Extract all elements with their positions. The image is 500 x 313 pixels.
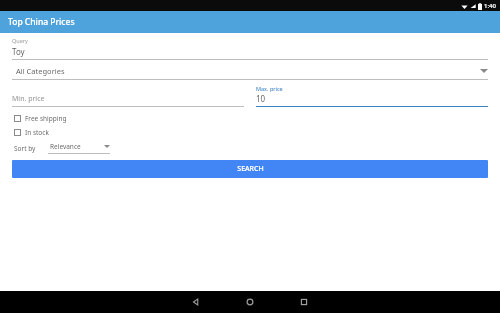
- button[interactable]: All Categories: [12, 66, 488, 80]
- button[interactable]: Relevance: [48, 142, 110, 154]
- button[interactable]: Recent apps: [277, 291, 331, 313]
- staticText: Relevance: [50, 142, 81, 151]
- button[interactable]: Max. price: [256, 85, 488, 107]
- staticText: All Categories: [16, 66, 65, 76]
- staticText: SEARCH: [237, 164, 264, 174]
- button[interactable]: Home: [223, 291, 277, 313]
- staticText: Query: [12, 37, 28, 44]
- staticText: Free shipping: [25, 114, 67, 123]
- staticText: Top China Prices: [8, 16, 75, 28]
- button[interactable]: SEARCH: [12, 160, 488, 178]
- staticText: 10: [256, 93, 266, 104]
- staticText: 1:40: [484, 2, 496, 10]
- button[interactable]: Free shipping: [12, 112, 69, 125]
- button[interactable]: Min. price: [12, 86, 244, 107]
- staticText: Min. price: [12, 94, 45, 104]
- staticText: Toy: [12, 46, 25, 57]
- button[interactable]: In stock: [12, 126, 51, 139]
- button[interactable]: Back: [169, 291, 223, 313]
- staticText: Sort by: [14, 144, 36, 153]
- button[interactable]: Query: [12, 37, 488, 60]
- staticText: In stock: [25, 128, 49, 137]
- staticText: Max. price: [256, 85, 283, 92]
